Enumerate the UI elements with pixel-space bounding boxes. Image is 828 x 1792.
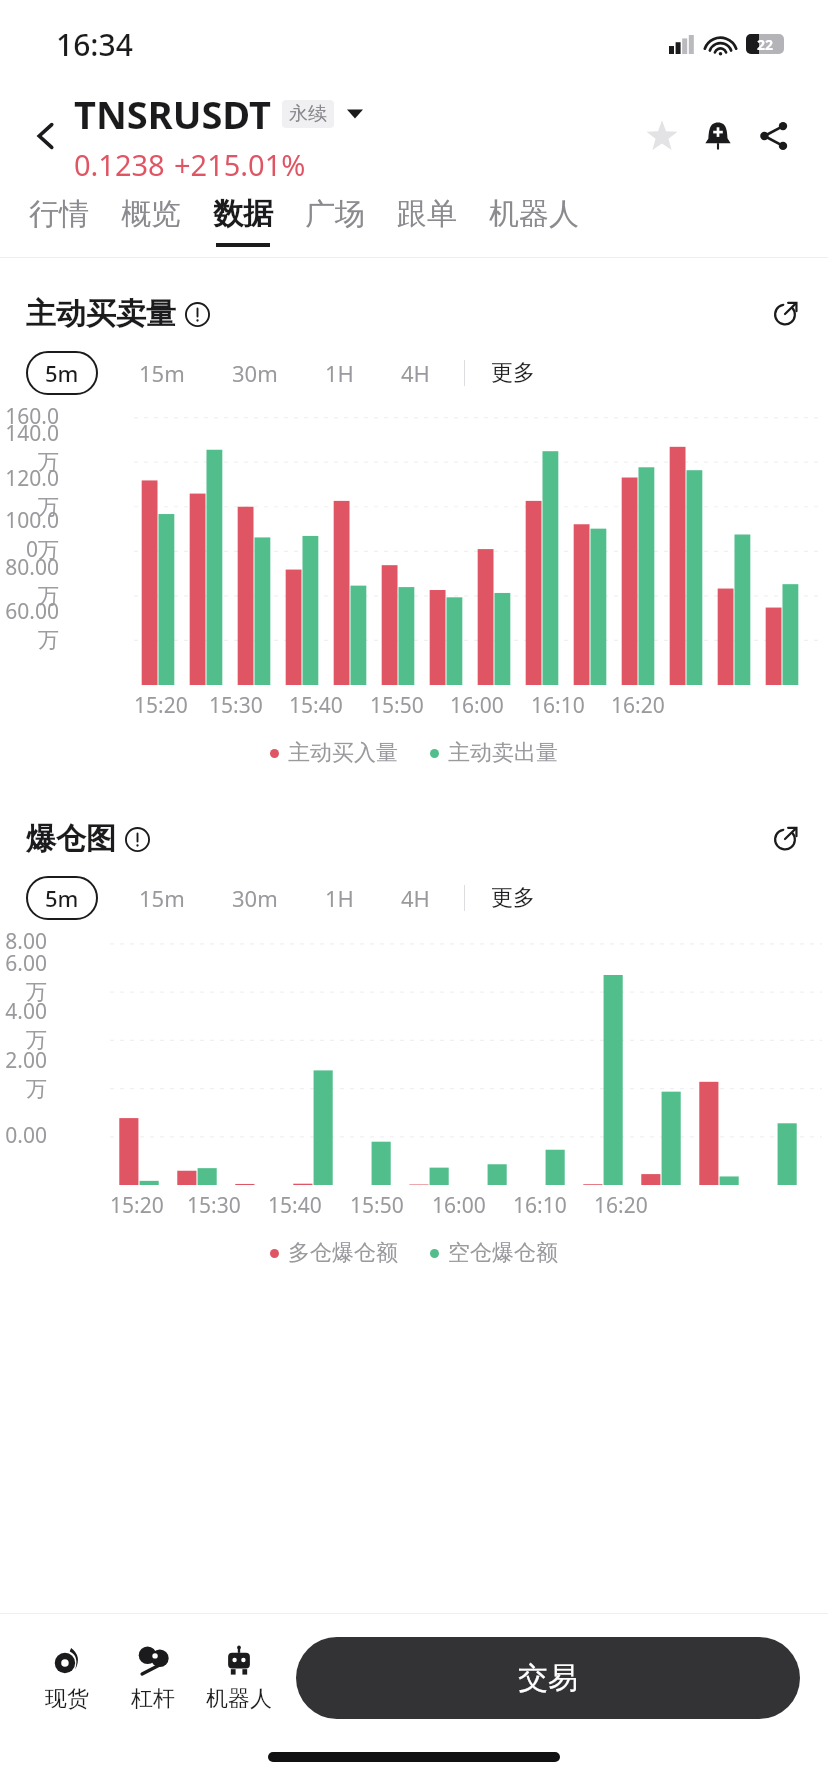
staticText: 5m xyxy=(45,358,79,388)
button[interactable]: Expand chart xyxy=(768,822,802,856)
staticText: 120.0万 xyxy=(0,464,59,520)
staticText: 15:50 xyxy=(350,1191,404,1220)
button[interactable]: 15m xyxy=(131,348,193,398)
staticText: 140.0万 xyxy=(0,419,59,475)
button[interactable]: Share xyxy=(746,108,802,164)
staticText: 现货 xyxy=(45,1685,89,1713)
staticText: 概览 xyxy=(121,195,181,233)
button[interactable]: 行情 xyxy=(26,195,92,247)
staticText: 广场 xyxy=(305,195,365,233)
staticText: 15m xyxy=(139,883,185,913)
button[interactable]: Switch contract xyxy=(344,103,366,125)
staticText: 16:20 xyxy=(611,691,665,720)
staticText: 多仓爆仓额 xyxy=(288,1239,398,1267)
staticText: 15:20 xyxy=(134,691,188,720)
staticText: 4H xyxy=(401,358,430,388)
staticText: 更多 xyxy=(491,359,535,387)
staticText: 1H xyxy=(325,883,354,913)
staticText: 杠杆 xyxy=(131,1685,175,1713)
staticText: 1H xyxy=(325,358,354,388)
staticText: 16:10 xyxy=(531,691,585,720)
button[interactable]: 5m xyxy=(26,351,98,395)
staticText: 机器人 xyxy=(206,1685,272,1713)
staticText: 15:50 xyxy=(370,691,424,720)
button[interactable]: Favourite xyxy=(634,108,690,164)
staticText: 15:20 xyxy=(110,1191,164,1220)
staticText: 16:00 xyxy=(450,691,504,720)
button[interactable]: 1H xyxy=(317,873,362,923)
staticText: 0.00 xyxy=(0,1121,47,1150)
button[interactable]: 更多 xyxy=(491,349,535,397)
staticText: +215.01% xyxy=(174,145,306,184)
staticText: 15:30 xyxy=(209,691,263,720)
staticText: 4.00万 xyxy=(0,997,47,1053)
staticText: 2.00万 xyxy=(0,1046,47,1102)
staticText: 22 xyxy=(757,35,774,54)
staticText: 永续 xyxy=(289,102,327,126)
button[interactable]: 机器人 xyxy=(196,1614,282,1742)
button[interactable]: 广场 xyxy=(302,195,368,247)
staticText: 空仓爆仓额 xyxy=(448,1239,558,1267)
staticText: 16:10 xyxy=(513,1191,567,1220)
staticText: 交易 xyxy=(518,1659,578,1697)
staticText: 更多 xyxy=(491,884,535,912)
staticText: 16:20 xyxy=(594,1191,648,1220)
staticText: 行情 xyxy=(29,195,89,233)
staticText: 16:34 xyxy=(56,24,133,65)
staticText: 16:00 xyxy=(432,1191,486,1220)
staticText: 15:30 xyxy=(187,1191,241,1220)
staticText: 爆仓图 xyxy=(26,820,116,858)
staticText: 60.00万 xyxy=(0,597,59,653)
staticText: 15:40 xyxy=(289,691,343,720)
staticText: 主动卖出量 xyxy=(448,739,558,767)
button[interactable]: Expand chart xyxy=(768,297,802,331)
staticText: 机器人 xyxy=(489,195,579,233)
button[interactable]: 数据 xyxy=(210,195,276,247)
staticText: 30m xyxy=(232,883,278,913)
staticText: 15:40 xyxy=(268,1191,322,1220)
button[interactable]: 1H xyxy=(317,348,362,398)
staticText: TNSRUSDT xyxy=(74,88,271,140)
button[interactable]: 机器人 xyxy=(486,195,582,247)
button[interactable]: 15m xyxy=(131,873,193,923)
staticText: 主动买卖量 xyxy=(26,295,176,333)
staticText: 5m xyxy=(45,883,79,913)
button[interactable]: 更多 xyxy=(491,874,535,922)
staticText: 30m xyxy=(232,358,278,388)
button[interactable]: 30m xyxy=(224,873,286,923)
staticText: 跟单 xyxy=(397,195,457,233)
staticText: 80.00万 xyxy=(0,553,59,609)
staticText: 主动买入量 xyxy=(288,739,398,767)
staticText: 8.00万 xyxy=(0,927,47,957)
button[interactable]: 4H xyxy=(393,348,438,398)
staticText: 100.00万 xyxy=(0,506,59,564)
staticText: 数据 xyxy=(213,195,273,233)
button[interactable]: 杠杆 xyxy=(110,1614,196,1742)
button[interactable]: 5m xyxy=(26,876,98,920)
button[interactable]: 30m xyxy=(224,348,286,398)
staticText: 15m xyxy=(139,358,185,388)
staticText: 160.0万 xyxy=(0,402,59,431)
staticText: 6.00万 xyxy=(0,949,47,1005)
button[interactable]: 跟单 xyxy=(394,195,460,247)
staticText: 0.1238 xyxy=(74,145,165,184)
button[interactable]: 概览 xyxy=(118,195,184,247)
button[interactable]: 交易 xyxy=(296,1637,800,1719)
button[interactable]: Back xyxy=(18,108,74,164)
button[interactable]: Price alert xyxy=(690,108,746,164)
button[interactable]: 现货 xyxy=(24,1614,110,1742)
button[interactable]: 4H xyxy=(393,873,438,923)
staticText: 4H xyxy=(401,883,430,913)
